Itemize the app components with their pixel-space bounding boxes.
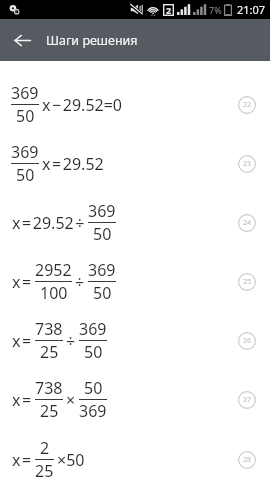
staticText: 50 bbox=[93, 223, 112, 240]
staticText: x = bbox=[12, 389, 32, 411]
staticText: 369 bbox=[79, 318, 107, 340]
staticText: 50 bbox=[16, 164, 35, 181]
staticText: 25 bbox=[40, 400, 59, 417]
staticText: 50 bbox=[84, 341, 103, 358]
button[interactable]: x = bbox=[0, 321, 270, 361]
staticText: 25 bbox=[40, 341, 59, 358]
staticText: 100 bbox=[40, 282, 68, 299]
staticText: x − 29.52=0 bbox=[42, 94, 123, 116]
staticText: 50 bbox=[93, 282, 112, 299]
button[interactable]: x = bbox=[0, 380, 270, 420]
staticText: 25 bbox=[35, 460, 54, 477]
button[interactable]: x = bbox=[0, 440, 270, 480]
staticText: Шаги решения bbox=[46, 32, 138, 49]
staticText: 23 bbox=[243, 159, 252, 169]
staticText: 369 bbox=[88, 200, 116, 222]
staticText: 2 bbox=[40, 437, 50, 459]
staticText: ÷ bbox=[75, 271, 85, 293]
staticText: 24 bbox=[243, 218, 252, 228]
staticText: ×50 bbox=[57, 449, 85, 471]
staticText: 738 bbox=[35, 318, 63, 340]
button[interactable]: Back bbox=[0, 19, 44, 61]
staticText: × bbox=[66, 389, 76, 411]
button[interactable]: x = 29.52 ÷ bbox=[0, 203, 270, 243]
staticText: 26 bbox=[243, 336, 252, 346]
staticText: 369 bbox=[79, 400, 107, 417]
button[interactable]: 369 bbox=[0, 85, 270, 125]
staticText: 22 bbox=[243, 100, 252, 110]
staticText: 369 bbox=[11, 82, 39, 104]
staticText: 738 bbox=[35, 377, 63, 399]
staticText: 28 bbox=[243, 455, 252, 465]
staticText: 7% bbox=[209, 4, 222, 16]
staticText: x = 29.52 bbox=[42, 153, 104, 175]
button[interactable]: 369 bbox=[0, 144, 270, 184]
staticText: 369 bbox=[88, 259, 116, 281]
staticText: 50 bbox=[16, 105, 35, 122]
staticText: 2 bbox=[166, 4, 172, 16]
staticText: 25 bbox=[243, 277, 252, 287]
staticText: 2952 bbox=[35, 259, 72, 281]
staticText: 369 bbox=[11, 141, 39, 163]
staticText: ÷ bbox=[66, 330, 76, 352]
staticText: x = bbox=[12, 330, 32, 352]
staticText: x = bbox=[12, 271, 32, 293]
staticText: 21:07 bbox=[237, 2, 266, 17]
staticText: x = bbox=[12, 449, 32, 471]
button[interactable]: x = bbox=[0, 262, 270, 302]
staticText: x = 29.52 ÷ bbox=[12, 212, 85, 234]
staticText: 27 bbox=[243, 395, 252, 405]
staticText: 50 bbox=[84, 377, 103, 399]
